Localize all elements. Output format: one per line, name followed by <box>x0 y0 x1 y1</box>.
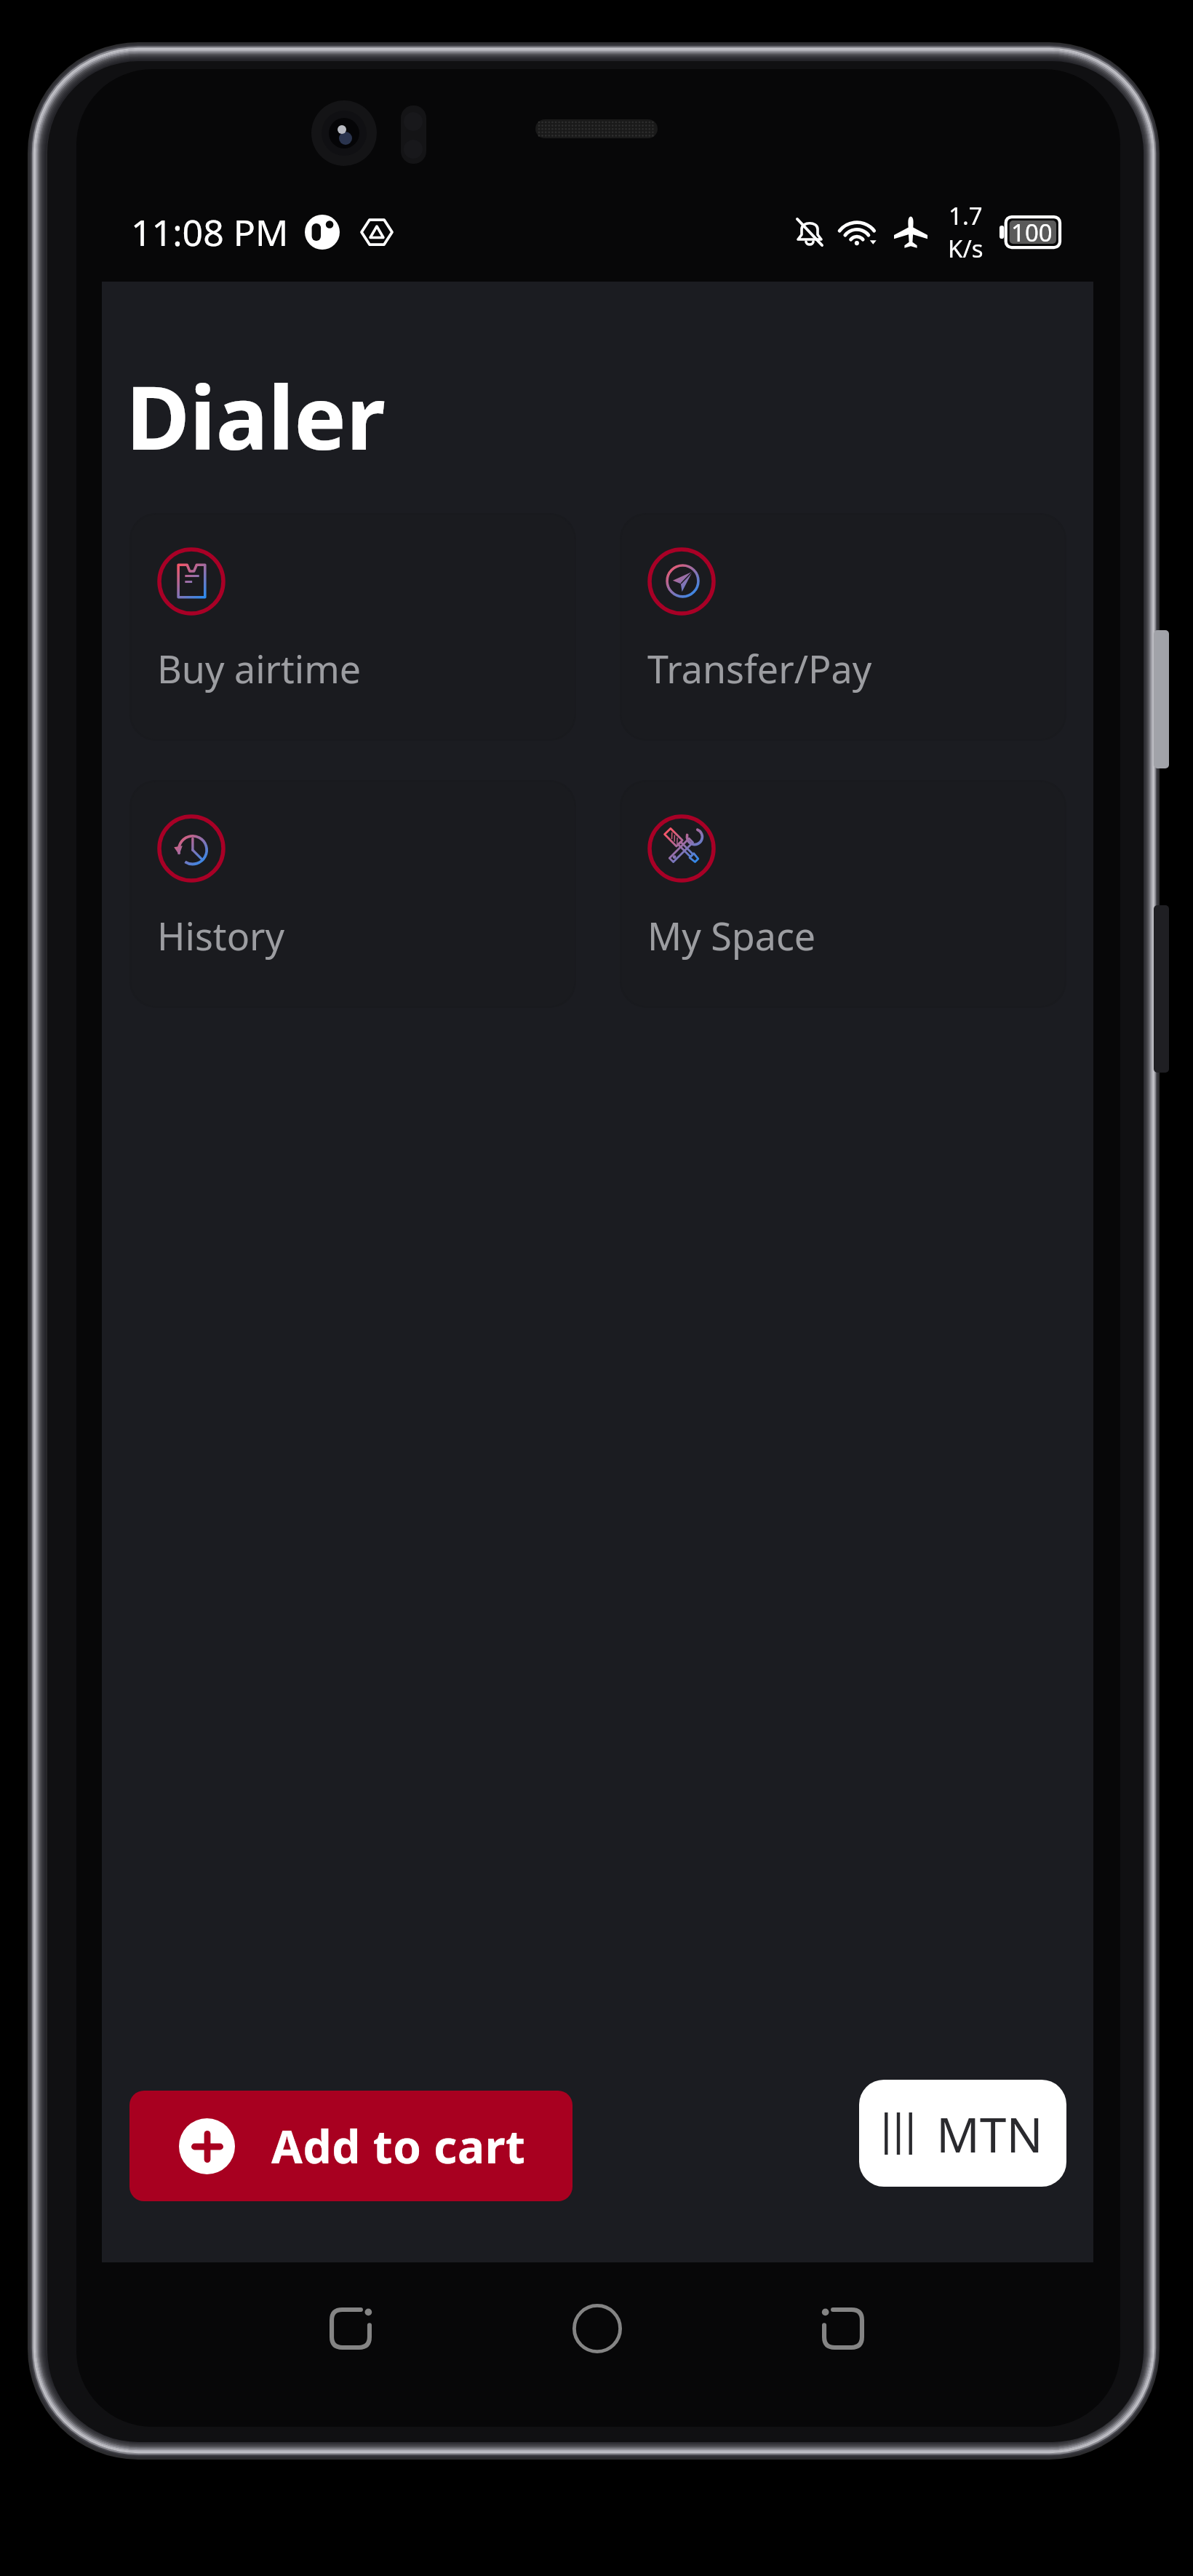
staticText: Buy airtime <box>157 643 362 694</box>
button[interactable]: Home <box>554 2285 641 2372</box>
staticText: 100 <box>1011 216 1053 249</box>
staticText: Transfer/Pay <box>647 643 872 694</box>
button[interactable]: MTN <box>859 2080 1066 2187</box>
staticText: My Space <box>647 910 816 961</box>
staticText: Dialer <box>126 357 386 475</box>
staticText: 1.7 <box>949 199 983 232</box>
button[interactable]: Recent apps <box>307 2285 394 2372</box>
button[interactable]: Buy airtime <box>129 513 576 741</box>
button[interactable]: Back <box>799 2285 887 2372</box>
staticText: MTN <box>936 2101 1043 2166</box>
button[interactable]: My Space <box>620 780 1066 1008</box>
staticText: 11:08 PM <box>131 207 289 257</box>
staticText: History <box>157 910 285 961</box>
button[interactable]: Transfer/Pay <box>620 513 1066 741</box>
button[interactable]: Add to cart <box>129 2091 572 2201</box>
button[interactable]: History <box>129 780 576 1008</box>
staticText: Add to cart <box>271 2115 526 2177</box>
staticText: K/s <box>948 232 983 265</box>
